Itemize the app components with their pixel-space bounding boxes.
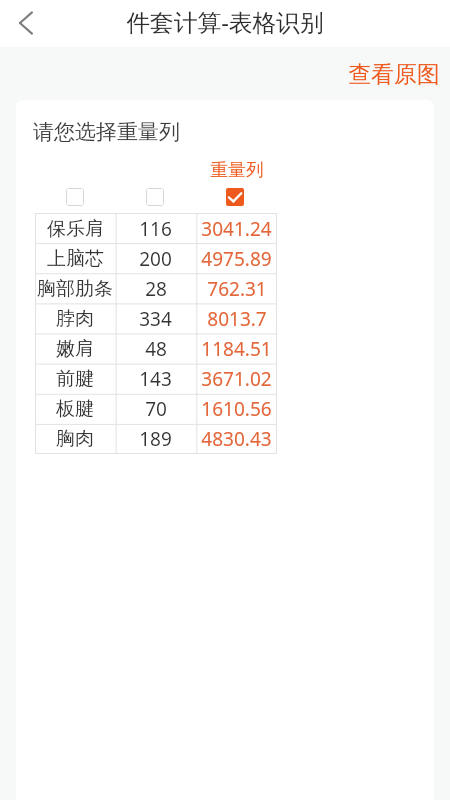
button[interactable]: 3671.02 [196, 364, 277, 394]
staticText: 脖肉 [56, 307, 94, 331]
button[interactable]: 胸肉 [35, 424, 115, 454]
button[interactable]: 28 [115, 274, 196, 304]
staticText: 4830.43 [201, 426, 272, 452]
staticText: 28 [145, 276, 167, 302]
button[interactable]: 4975.89 [196, 244, 277, 274]
button[interactable]: Back [0, 0, 48, 47]
button[interactable]: 143 [115, 364, 196, 394]
button[interactable]: 3041.24 [196, 213, 277, 244]
button[interactable]: 200 [115, 244, 196, 274]
staticText: 3671.02 [201, 366, 272, 392]
button[interactable]: 70 [115, 394, 196, 424]
staticText: 请您选择重量列 [33, 119, 180, 145]
staticText: 8013.7 [207, 306, 267, 332]
button[interactable]: 189 [115, 424, 196, 454]
button[interactable]: 1184.51 [196, 334, 277, 364]
staticText: 762.31 [207, 276, 267, 302]
button[interactable]: 嫩肩 [35, 334, 115, 364]
button[interactable]: 脖肉 [35, 304, 115, 334]
staticText: 1610.56 [201, 396, 272, 422]
button[interactable]: 762.31 [196, 274, 277, 304]
button[interactable]: 上脑芯 [35, 244, 115, 274]
button[interactable]: Select column [115, 186, 195, 208]
staticText: 70 [145, 396, 167, 422]
staticText: 重量列 [210, 159, 264, 181]
button[interactable]: 48 [115, 334, 196, 364]
button[interactable]: 前腱 [35, 364, 115, 394]
staticText: 前腱 [56, 367, 94, 391]
staticText: 件套计算-表格识别 [126, 6, 324, 38]
staticText: 48 [145, 336, 167, 362]
button[interactable]: 8013.7 [196, 304, 277, 334]
staticText: 189 [139, 426, 172, 452]
staticText: 嫩肩 [56, 337, 94, 361]
button[interactable]: 胸部肋条 [35, 274, 115, 304]
button[interactable]: 板腱 [35, 394, 115, 424]
button[interactable]: 4830.43 [196, 424, 277, 454]
staticText: 胸部肋条 [37, 277, 113, 301]
staticText: 4975.89 [201, 246, 272, 272]
staticText: 查看原图 [348, 60, 440, 89]
button[interactable]: 保乐肩 [35, 213, 115, 244]
staticText: 胸肉 [56, 427, 94, 451]
button[interactable]: 334 [115, 304, 196, 334]
staticText: 板腱 [56, 397, 94, 421]
staticText: 3041.24 [201, 216, 272, 242]
staticText: 1184.51 [201, 336, 272, 362]
staticText: 143 [139, 366, 172, 392]
button[interactable]: 116 [115, 213, 196, 244]
button[interactable]: Select column [35, 186, 115, 208]
staticText: 保乐肩 [47, 217, 104, 241]
staticText: 200 [139, 246, 172, 272]
button[interactable]: Selected column [195, 186, 275, 208]
staticText: 116 [139, 216, 172, 242]
staticText: 上脑芯 [47, 247, 104, 271]
button[interactable]: 1610.56 [196, 394, 277, 424]
button[interactable]: 查看原图 [348, 60, 440, 89]
staticText: 334 [139, 306, 172, 332]
